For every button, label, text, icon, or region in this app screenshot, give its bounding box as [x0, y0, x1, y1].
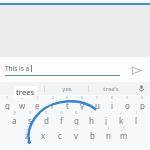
staticText: t: [66, 100, 69, 110]
staticText: w: [19, 100, 26, 110]
button[interactable]: :: [68, 125, 84, 140]
staticText: ": [43, 125, 45, 130]
button[interactable]: 4: [45, 95, 60, 110]
staticText: h: [89, 115, 94, 125]
staticText: n: [106, 130, 111, 140]
staticText: b: [90, 130, 95, 140]
staticText: f: [60, 115, 63, 125]
staticText: ': [60, 125, 61, 130]
staticText: 1: [6, 95, 9, 100]
button[interactable]: ;: [84, 125, 100, 140]
staticText: &: [75, 110, 78, 115]
staticText: m: [120, 130, 128, 140]
staticText: s: [28, 115, 32, 125]
staticText: #: [29, 110, 32, 115]
button[interactable]: +: [114, 110, 129, 125]
staticText: l: [135, 115, 138, 125]
staticText: Ted: [17, 85, 27, 93]
staticText: This is a: [5, 64, 30, 73]
button[interactable]: 8: [105, 95, 120, 110]
staticText: g: [74, 115, 79, 125]
staticText: 7: [96, 95, 99, 100]
staticText: 3: [36, 95, 39, 100]
staticText: ;: [92, 125, 93, 130]
staticText: yes: [62, 85, 72, 93]
staticText: q: [5, 100, 10, 110]
staticText: c: [58, 130, 62, 140]
staticText: %: [60, 110, 63, 115]
button[interactable]: ?: [116, 125, 132, 140]
staticText: d: [44, 115, 49, 125]
staticText: 8: [111, 95, 114, 100]
staticText: 4: [52, 95, 55, 100]
button[interactable]: #: [22, 110, 38, 125]
staticText: 9: [126, 95, 129, 100]
staticText: z: [25, 130, 29, 140]
button[interactable]: &: [69, 110, 84, 125]
staticText: r: [51, 100, 55, 110]
staticText: ?: [123, 125, 125, 130]
button[interactable]: @: [6, 110, 22, 125]
staticText: @: [13, 110, 17, 115]
staticText: 0: [141, 95, 144, 100]
staticText: /: [108, 125, 110, 130]
staticText: 6: [81, 95, 84, 100]
button[interactable]: trees: [14, 86, 37, 98]
staticText: :: [76, 125, 77, 130]
button[interactable]: 2: [15, 95, 30, 110]
button[interactable]: 9: [120, 95, 135, 110]
staticText: 5: [66, 95, 69, 100]
staticText: y: [80, 100, 85, 110]
button[interactable]: (: [129, 110, 144, 125]
button[interactable]: Ted: [0, 82, 44, 95]
button[interactable]: ": [35, 125, 52, 140]
staticText: a: [12, 115, 17, 125]
staticText: (: [136, 110, 138, 115]
staticText: p: [140, 100, 145, 110]
button[interactable]: *: [84, 110, 99, 125]
button[interactable]: !: [18, 125, 35, 140]
staticText: tree's: [103, 85, 119, 93]
staticText: x: [41, 130, 46, 140]
staticText: v: [74, 130, 79, 140]
staticText: j: [105, 115, 108, 125]
staticText: 2: [21, 95, 24, 100]
staticText: trees: [16, 87, 35, 97]
staticText: k: [119, 115, 124, 125]
button[interactable]: ': [52, 125, 68, 140]
button[interactable]: 3: [30, 95, 45, 110]
button[interactable]: tree's: [89, 82, 132, 95]
button[interactable]: 1: [0, 95, 15, 110]
button[interactable]: This is a: [5, 64, 126, 76]
button[interactable]: 6: [75, 95, 90, 110]
staticText: -: [106, 110, 108, 115]
staticText: o: [125, 100, 130, 110]
button[interactable]: 5: [60, 95, 75, 110]
button[interactable]: /: [100, 125, 116, 140]
staticText: i: [111, 100, 114, 110]
staticText: u: [95, 100, 100, 110]
button[interactable]: Send: [126, 60, 146, 80]
button[interactable]: 7: [90, 95, 105, 110]
staticText: !: [27, 125, 28, 130]
button[interactable]: $: [38, 110, 54, 125]
staticText: e: [35, 100, 40, 110]
button[interactable]: yes: [45, 82, 88, 95]
staticText: *: [91, 110, 93, 115]
button[interactable]: -: [99, 110, 114, 125]
button[interactable]: Voice input: [132, 82, 150, 95]
button[interactable]: 0: [135, 95, 150, 110]
button[interactable]: %: [54, 110, 69, 125]
staticText: +: [120, 110, 123, 115]
staticText: $: [45, 110, 48, 115]
